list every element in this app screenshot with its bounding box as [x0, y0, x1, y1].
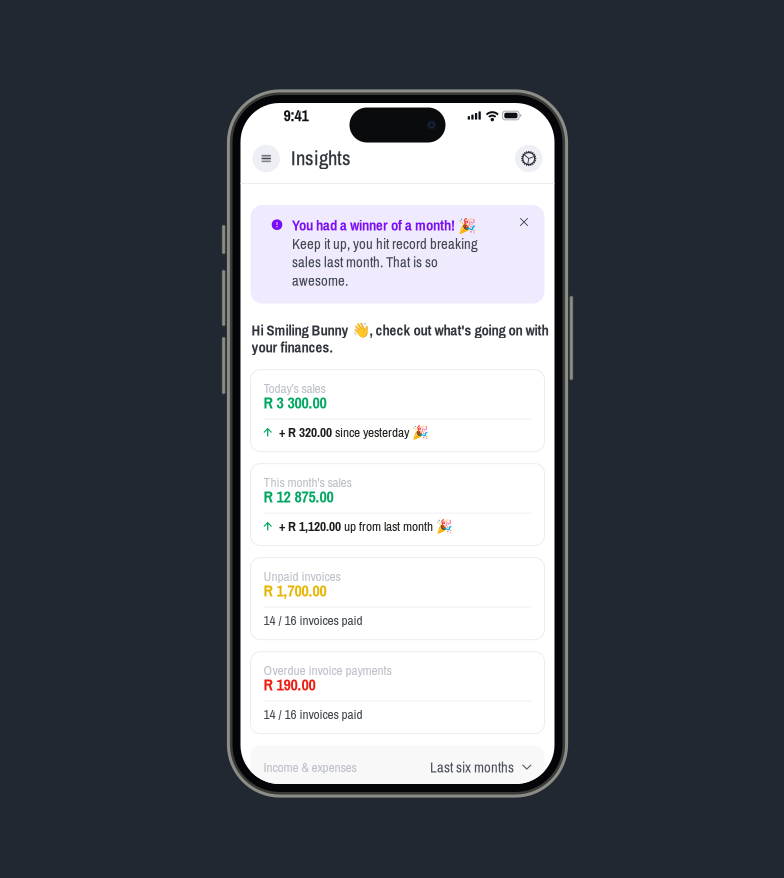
staticText: + R 1,120.00 up from last month 🎉 — [279, 517, 453, 535]
staticText: R 12 875.00 — [263, 486, 333, 507]
staticText: Today’s sales — [263, 379, 325, 397]
staticText: 9:41 — [283, 105, 308, 126]
button[interactable]: Settings — [515, 145, 542, 172]
staticText: awesome. — [292, 270, 348, 290]
staticText: sales last month. That is so — [292, 252, 438, 272]
button[interactable]: Dismiss — [516, 214, 531, 229]
staticText: R 1,700.00 — [263, 580, 326, 601]
staticText: your finances. — [251, 337, 332, 357]
staticText: This month's sales — [263, 473, 351, 491]
staticText: You had a winner of a month! 🎉 — [292, 215, 476, 235]
staticText: + R 320.00 since yesterday 🎉 — [279, 423, 429, 441]
button[interactable]: Menu — [252, 145, 280, 172]
button[interactable]: Last six months — [430, 757, 531, 777]
staticText: Hi Smiling Bunny 👋, check out what's goi… — [251, 320, 548, 340]
staticText: 14 / 16 invoices paid — [263, 705, 362, 723]
staticText: Last six months — [430, 757, 514, 777]
staticText: R 190.00 — [263, 674, 315, 695]
staticText: Insights — [291, 144, 351, 171]
staticText: 14 / 16 invoices paid — [263, 611, 362, 629]
staticText: Income & expenses — [263, 758, 356, 776]
staticText: Keep it up, you hit record breaking — [292, 234, 478, 253]
staticText: Unpaid invoices — [263, 567, 340, 585]
staticText: Overdue invoice payments — [263, 661, 391, 679]
staticText: R 3 300.00 — [263, 392, 326, 413]
